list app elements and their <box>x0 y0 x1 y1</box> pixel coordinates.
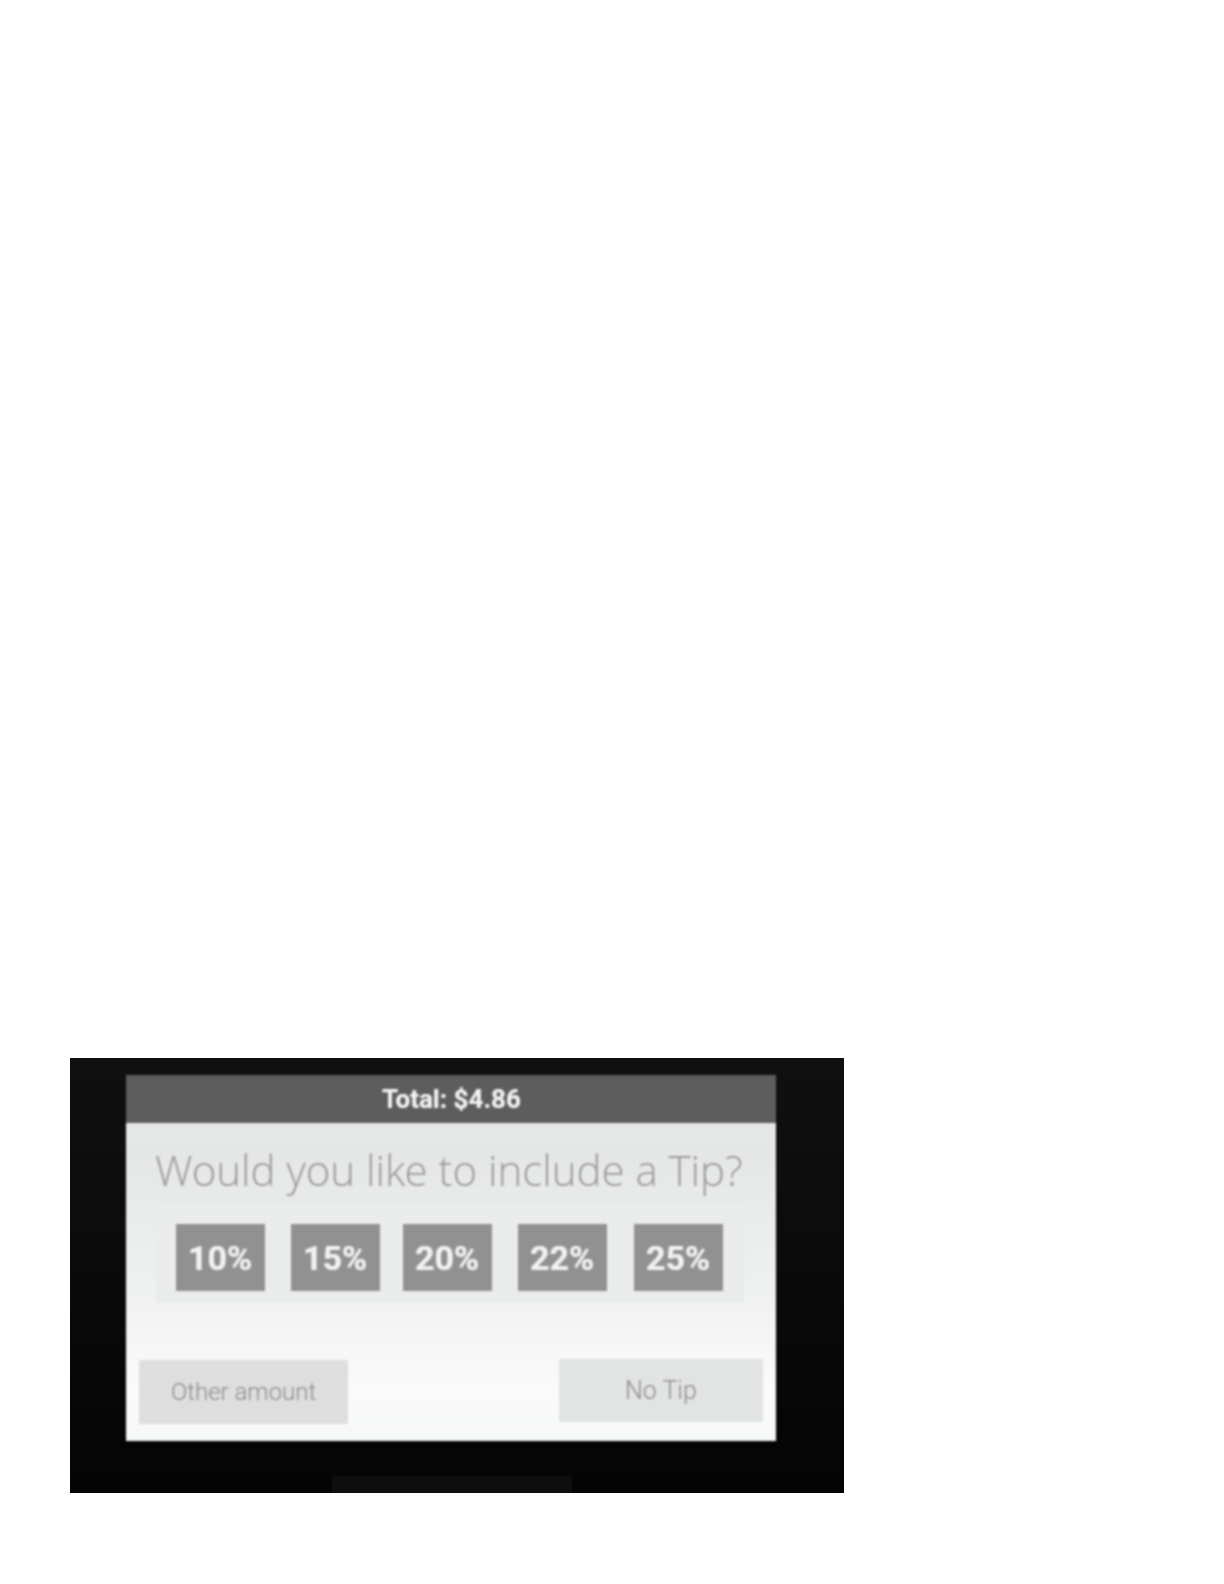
button[interactable]: Order total <box>126 1075 776 1123</box>
button[interactable]: Other amount <box>139 1360 348 1424</box>
staticText: No Tip <box>625 1376 697 1405</box>
button[interactable]: 22% <box>518 1224 607 1291</box>
button[interactable]: 15% <box>291 1224 380 1291</box>
staticText: 15% <box>303 1238 368 1278</box>
button[interactable]: No Tip <box>559 1359 763 1422</box>
staticText: Would you like to include a Tip? <box>155 1141 743 1198</box>
staticText: Total: $4.86 <box>382 1084 521 1114</box>
staticText: 10% <box>188 1238 253 1278</box>
button[interactable]: 25% <box>634 1224 723 1291</box>
button[interactable]: 10% <box>176 1224 265 1291</box>
staticText: 22% <box>530 1238 595 1278</box>
staticText: Other amount <box>171 1378 317 1406</box>
staticText: 20% <box>415 1238 480 1278</box>
button[interactable]: 20% <box>403 1224 492 1291</box>
staticText: 25% <box>646 1238 711 1278</box>
